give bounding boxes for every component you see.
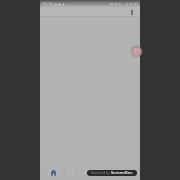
button[interactable]: Profile [77,160,93,180]
button[interactable]: Recorded by Screen Recorder [87,170,137,176]
button[interactable]: More options [128,9,135,16]
button[interactable]: Overlay bubble [130,45,143,58]
staticText: 10:24 [42,1,53,7]
staticText: Recorded by [91,171,110,175]
staticText: ScreenRec [111,170,133,176]
button[interactable]: Home [45,160,61,180]
